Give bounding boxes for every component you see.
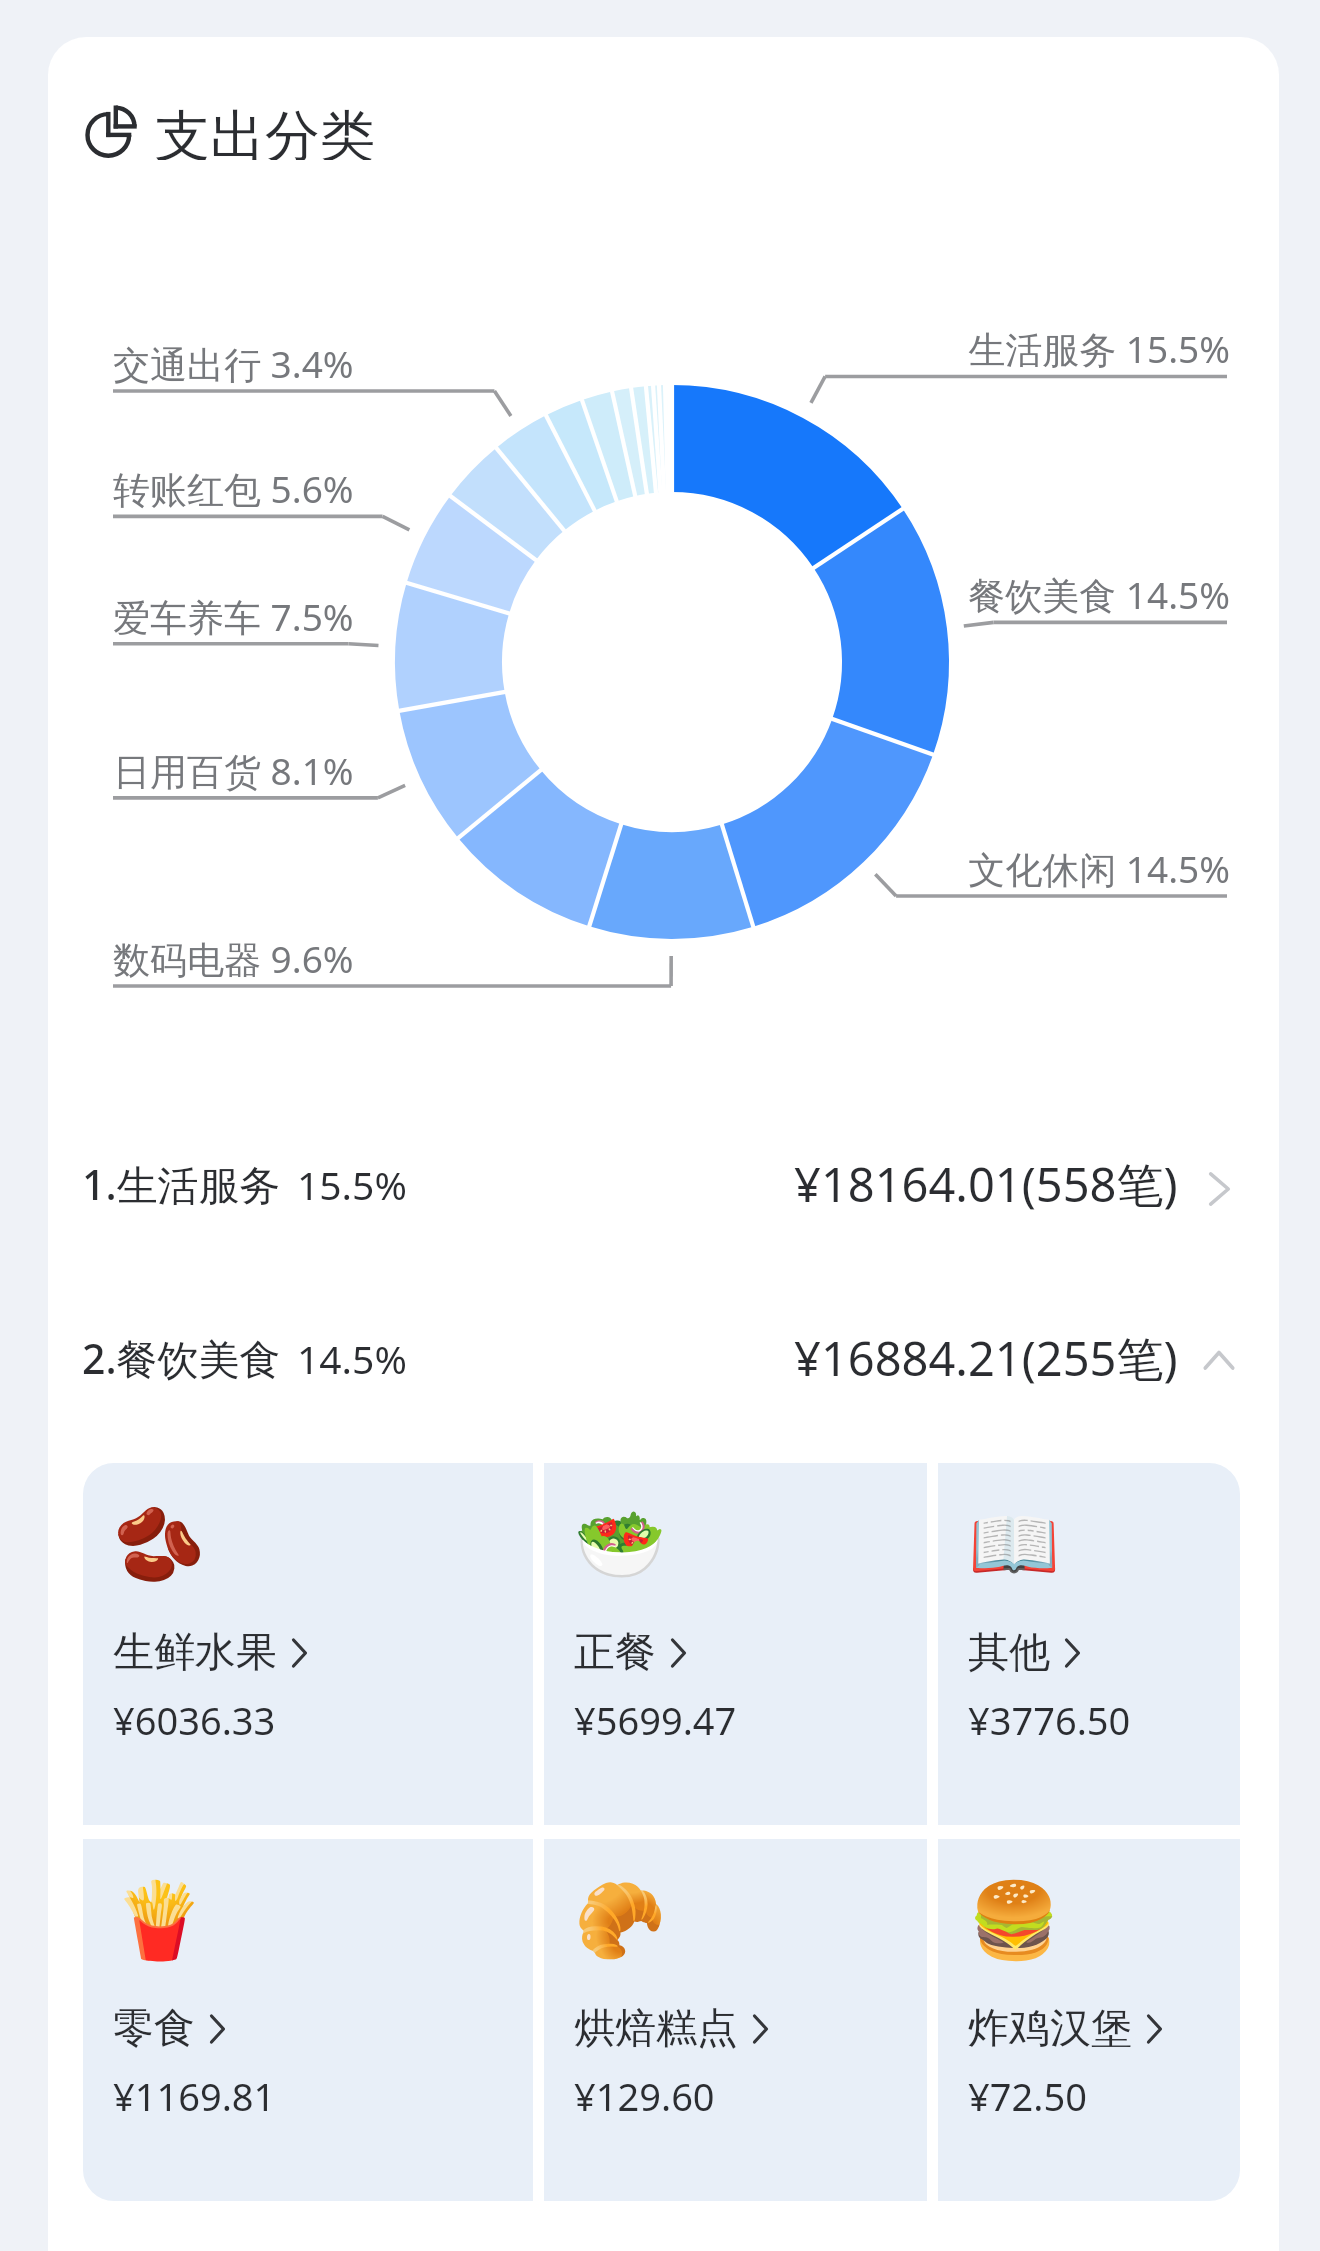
staticText: 1.生活服务 xyxy=(82,1156,281,1212)
staticText: 🥐 xyxy=(574,1877,667,1964)
other: Collapse xyxy=(1203,1342,1235,1384)
staticText: 支出分类 xyxy=(155,102,375,160)
other: Expand xyxy=(1203,1168,1235,1210)
staticText: 🍔 xyxy=(968,1877,1061,1964)
staticText: 零食 xyxy=(113,2003,195,2055)
staticText: 转账红包 5.6% xyxy=(113,463,354,514)
staticText: ¥72.50 xyxy=(968,2070,1087,2122)
staticText: 文化休闲 14.5% xyxy=(700,843,1230,894)
staticText: ¥6036.33 xyxy=(113,1694,276,1746)
staticText: 🍟 xyxy=(113,1877,206,1964)
staticText: 生活服务 15.5% xyxy=(700,323,1230,374)
staticText: ¥16884.21(255笔) xyxy=(794,1326,1178,1390)
staticText: 正餐 xyxy=(574,1627,656,1679)
other: Expense categories xyxy=(85,105,137,158)
staticText: ¥129.60 xyxy=(574,2070,715,2122)
button[interactable]: 2.餐饮美食 xyxy=(48,1306,1279,1410)
button[interactable]: Expense categories xyxy=(85,102,375,160)
staticText: ¥3776.50 xyxy=(968,1694,1131,1746)
staticText: 15.5% xyxy=(297,1158,407,1211)
staticText: 📖 xyxy=(968,1501,1061,1588)
staticText: 烘焙糕点 xyxy=(574,2003,738,2055)
staticText: ¥1169.81 xyxy=(113,2070,276,2122)
staticText: 炸鸡汉堡 xyxy=(968,2003,1132,2055)
staticText: 爱车养车 7.5% xyxy=(113,591,354,642)
staticText: 2.餐饮美食 xyxy=(82,1330,281,1386)
staticText: ¥18164.01(558笔) xyxy=(794,1152,1178,1216)
staticText: 其他 xyxy=(968,1627,1050,1679)
button[interactable]: 📖 xyxy=(938,1463,1240,1825)
button[interactable]: 🥐 xyxy=(544,1839,927,2201)
button[interactable]: 🍔 xyxy=(938,1839,1240,2201)
button[interactable]: 🫘 xyxy=(83,1463,533,1825)
button[interactable]: 1.生活服务 xyxy=(48,1132,1279,1236)
staticText: 交通出行 3.4% xyxy=(113,338,354,389)
staticText: 生鲜水果 xyxy=(113,1627,277,1679)
staticText: ¥5699.47 xyxy=(574,1694,737,1746)
button[interactable]: 🍟 xyxy=(83,1839,533,2201)
staticText: 🥗 xyxy=(574,1501,667,1588)
button[interactable]: 🥗 xyxy=(544,1463,927,1825)
staticText: 14.5% xyxy=(297,1332,407,1385)
staticText: 数码电器 9.6% xyxy=(113,933,354,984)
staticText: 餐饮美食 14.5% xyxy=(700,569,1230,620)
staticText: 🫘 xyxy=(113,1501,206,1588)
staticText: 日用百货 8.1% xyxy=(113,745,354,796)
